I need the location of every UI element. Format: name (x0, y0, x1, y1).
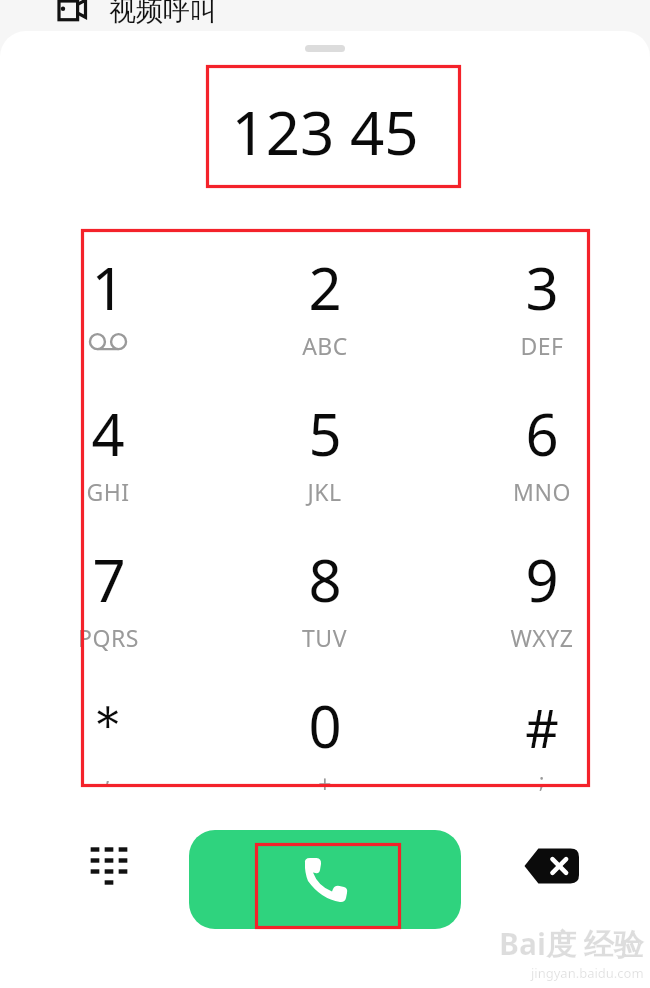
button[interactable]: 视频呼叫 (55, 0, 219, 25)
staticText: 123 45 (231, 91, 419, 173)
staticText: ; (539, 767, 545, 794)
button[interactable]: Keypad (80, 837, 138, 895)
staticText: 0 (308, 686, 342, 765)
staticText: DEF (520, 330, 564, 361)
staticText: GHI (86, 476, 130, 507)
button[interactable]: 9 (433, 526, 650, 672)
staticText: WXYZ (510, 622, 574, 653)
staticText: 3 (525, 248, 559, 327)
button[interactable]: 6 (433, 380, 650, 526)
button[interactable]: 4 (0, 380, 216, 526)
staticText: 4 (91, 394, 125, 473)
button[interactable]: 3 (433, 234, 650, 380)
button[interactable]: 2 (216, 234, 433, 380)
button[interactable]: 8 (216, 526, 433, 672)
staticText: JKL (307, 476, 342, 507)
staticText: # (525, 692, 559, 763)
staticText: 1 (91, 248, 125, 327)
button[interactable]: # (433, 672, 650, 818)
button[interactable]: 1 (0, 234, 216, 380)
button[interactable]: Backspace (518, 840, 582, 892)
staticText: 视频呼叫 (109, 0, 217, 25)
staticText: 8 (308, 540, 342, 619)
staticText: , (105, 762, 111, 789)
staticText: 2 (308, 248, 342, 327)
staticText: 7 (92, 540, 126, 619)
button[interactable]: 7 (0, 526, 216, 672)
staticText: ＊ (82, 692, 134, 758)
staticText: + (318, 768, 332, 799)
staticText: jingyan.baidu.com (531, 964, 644, 982)
button[interactable]: Call (189, 830, 461, 929)
staticText: ABC (302, 330, 348, 361)
staticText: 5 (308, 394, 342, 473)
staticText: 6 (525, 394, 559, 473)
staticText: Bai度 经验 (499, 923, 644, 964)
button[interactable]: 0 (216, 672, 433, 818)
staticText: PQRS (78, 622, 139, 653)
staticText: 9 (525, 540, 559, 619)
staticText: TUV (302, 622, 347, 653)
button[interactable]: ＊ (0, 672, 216, 818)
staticText: MNO (513, 476, 571, 507)
button[interactable]: 5 (216, 380, 433, 526)
